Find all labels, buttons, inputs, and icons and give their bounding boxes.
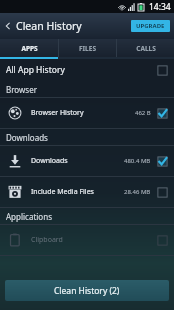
- staticText: Clipboard: [31, 235, 63, 245]
- staticText: FILES: [79, 44, 96, 53]
- button[interactable]: Unchecked: [157, 65, 168, 76]
- staticText: Browser History: [31, 108, 84, 118]
- staticText: Browser: [6, 84, 37, 95]
- button[interactable]: Unchecked: [157, 187, 168, 198]
- button[interactable]: UPGRADE: [131, 20, 170, 32]
- staticText: 462 B: [135, 109, 151, 117]
- button[interactable]: APPS: [0, 39, 58, 57]
- button[interactable]: FILES: [59, 39, 116, 57]
- button[interactable]: Clean History (2): [5, 280, 169, 301]
- button[interactable]: Downloads: [0, 146, 174, 176]
- staticText: Include Media Files: [31, 187, 94, 197]
- button[interactable]: Browser History: [0, 98, 174, 128]
- button[interactable]: Checked: [157, 108, 168, 119]
- button[interactable]: CALLS: [117, 39, 174, 57]
- button[interactable]: Unchecked: [157, 235, 168, 246]
- button[interactable]: Clipboard: [0, 225, 174, 255]
- staticText: 480.4 MB: [124, 157, 151, 165]
- staticText: 14:34: [149, 1, 171, 13]
- button[interactable]: Back: [0, 15, 90, 37]
- staticText: Clean History: [16, 19, 82, 33]
- button[interactable]: Include Media Files: [0, 177, 174, 207]
- staticText: Clean History (2): [54, 285, 120, 297]
- staticText: APPS: [21, 44, 38, 53]
- staticText: Applications: [6, 211, 52, 222]
- staticText: UPGRADE: [136, 22, 165, 30]
- staticText: Downloads: [6, 132, 48, 143]
- button[interactable]: Checked: [157, 156, 168, 167]
- staticText: 28.46 MB: [124, 188, 151, 196]
- other: Back: [4, 22, 12, 30]
- staticText: All App History: [6, 64, 65, 76]
- staticText: CALLS: [136, 44, 156, 53]
- staticText: Downloads: [31, 156, 68, 166]
- button[interactable]: All App History: [0, 59, 174, 81]
